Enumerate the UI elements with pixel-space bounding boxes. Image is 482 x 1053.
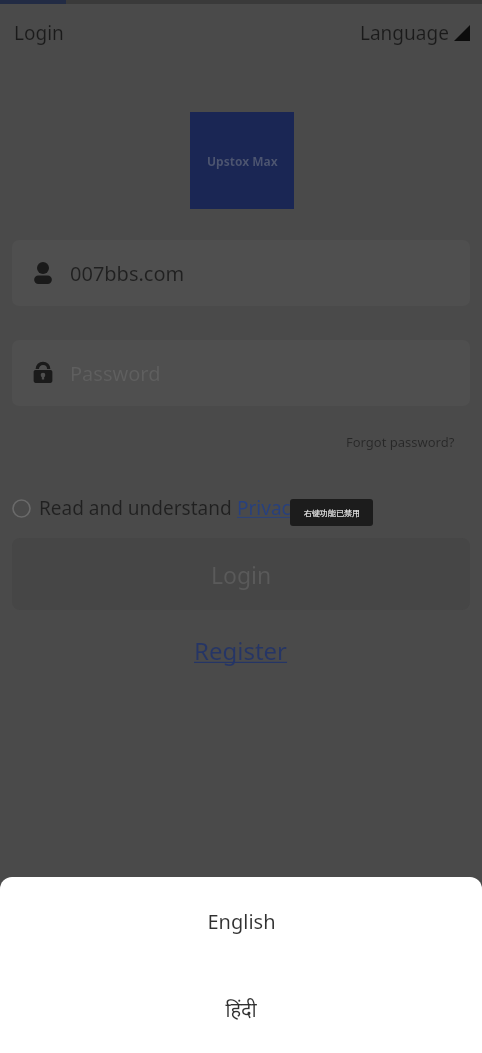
staticText: Login	[14, 20, 64, 46]
button[interactable]: Language	[356, 14, 474, 52]
button[interactable]: 007bbs.com	[12, 240, 470, 306]
staticText: Password	[70, 360, 161, 387]
staticText: Register	[194, 634, 288, 667]
staticText: Forgot password?	[346, 433, 455, 451]
button[interactable]: Forgot password?	[340, 428, 461, 456]
staticText: 右键功能已禁用	[304, 508, 360, 518]
staticText: Read and understand	[39, 495, 237, 521]
button[interactable]: Register	[184, 628, 298, 673]
staticText: 007bbs.com	[70, 260, 185, 287]
button[interactable]: Read and understand	[12, 492, 301, 524]
staticText: English	[207, 908, 276, 935]
staticText: Login	[211, 559, 272, 590]
button[interactable]: Login	[10, 14, 68, 52]
staticText: Privacy	[237, 495, 301, 521]
staticText: Language	[360, 20, 449, 46]
button[interactable]: English	[0, 877, 482, 965]
staticText: Upstox Max	[207, 153, 278, 169]
button[interactable]: हिंदी	[0, 965, 482, 1053]
button[interactable]: Password	[12, 340, 470, 406]
staticText: हिंदी	[225, 996, 257, 1023]
